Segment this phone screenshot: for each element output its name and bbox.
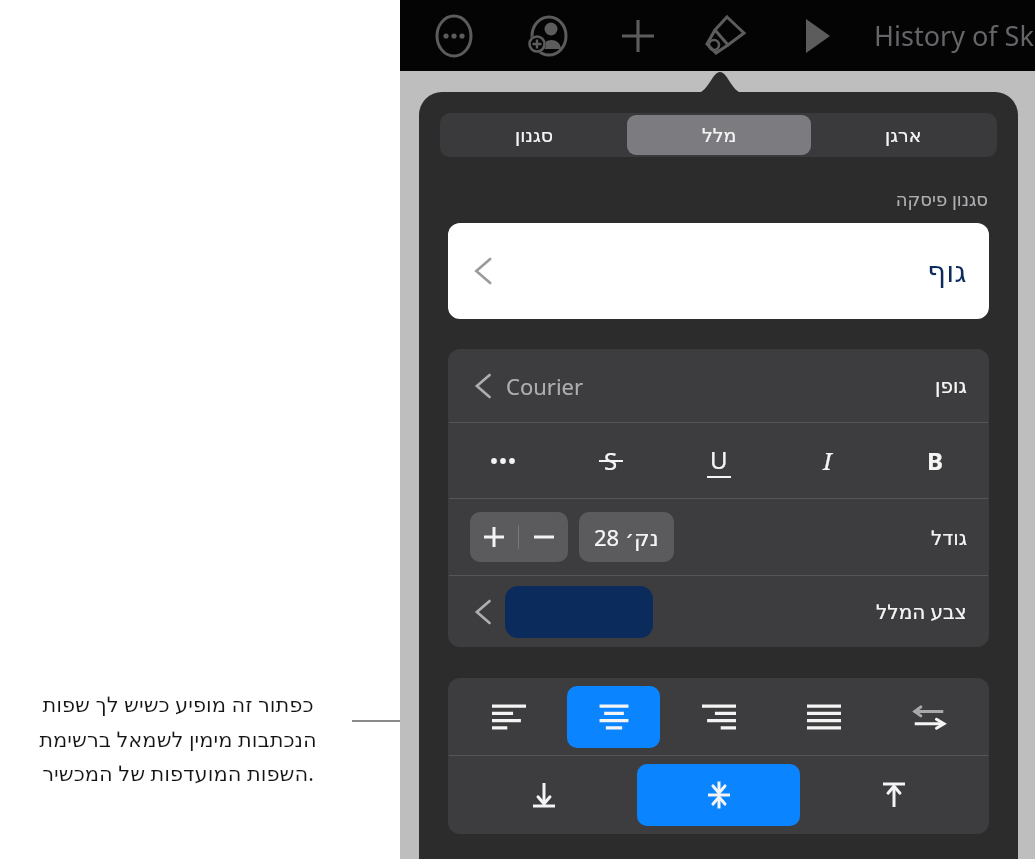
- staticText: ארגן: [885, 124, 922, 146]
- staticText: גוף: [927, 254, 967, 289]
- staticText: גופן: [935, 374, 967, 397]
- button[interactable]: Increase: [470, 512, 518, 562]
- staticText: B: [927, 444, 943, 477]
- button[interactable]: Strikethrough: [557, 423, 665, 498]
- button[interactable]: Play: [792, 12, 840, 60]
- button[interactable]: גוף: [470, 223, 967, 319]
- button[interactable]: Format: [702, 12, 750, 60]
- button[interactable]: Align right: [672, 686, 765, 748]
- button[interactable]: Decrease: [519, 512, 568, 562]
- button[interactable]: Italic: [773, 423, 881, 498]
- button[interactable]: More: [448, 423, 557, 498]
- staticText: גודל: [931, 526, 967, 549]
- button[interactable]: סגנון: [442, 115, 627, 155]
- button[interactable]: Courier: [470, 349, 967, 422]
- staticText: מלל: [702, 124, 737, 146]
- button[interactable]: Align left: [462, 686, 555, 748]
- button[interactable]: Text direction: [882, 686, 975, 748]
- staticText: 28 נק׳: [594, 522, 659, 552]
- button[interactable]: Underline: [665, 423, 773, 498]
- staticText: צבע המלל: [876, 598, 967, 625]
- button[interactable]: Align top: [812, 764, 975, 826]
- button[interactable]: מלל: [627, 115, 811, 155]
- button[interactable]: ארגן: [811, 115, 995, 155]
- staticText: I: [823, 444, 832, 477]
- button[interactable]: צבע המלל: [470, 576, 967, 647]
- staticText: Courier: [506, 371, 584, 401]
- staticText: סגנון: [515, 124, 554, 146]
- button[interactable]: Align bottom: [462, 764, 625, 826]
- staticText: S: [604, 444, 618, 477]
- button[interactable]: Align middle: [637, 764, 800, 826]
- button[interactable]: Collaborate: [522, 12, 570, 60]
- button[interactable]: More options: [430, 12, 478, 60]
- staticText: History of Ska: [874, 17, 1035, 54]
- button[interactable]: Align center: [567, 686, 660, 748]
- staticText: כפתור זה מופיע כשיש לך שפות הנכתבות מימי…: [8, 690, 348, 787]
- button[interactable]: 28 נק׳: [579, 512, 674, 562]
- button[interactable]: Bold: [881, 423, 989, 498]
- button[interactable]: Insert: [614, 12, 662, 60]
- staticText: U: [710, 443, 728, 476]
- button[interactable]: Justify: [777, 686, 870, 748]
- staticText: סגנון פיסקה: [419, 187, 988, 212]
